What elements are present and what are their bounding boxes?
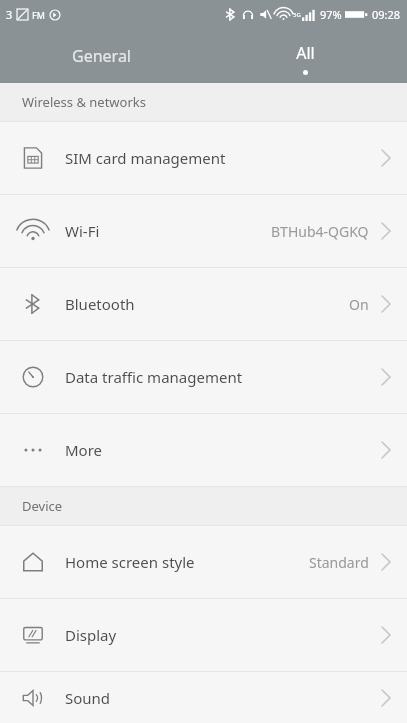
staticText: Home screen style — [65, 552, 195, 572]
staticText: Display — [65, 625, 117, 645]
button[interactable]: General — [0, 28, 203, 83]
button[interactable]: Display — [0, 599, 407, 671]
staticText: All — [296, 42, 315, 64]
staticText: 3G — [293, 11, 301, 19]
other: Open Bluetooth — [381, 295, 391, 313]
button[interactable]: Home screen style — [0, 526, 407, 598]
other: Open SIM card management — [381, 149, 391, 167]
other: Open Wi-Fi — [381, 222, 391, 240]
button[interactable]: Wi-Fi — [0, 195, 407, 267]
other: Open Display — [381, 626, 391, 644]
button[interactable]: SIM card management — [0, 122, 407, 194]
other: Open Data traffic management — [381, 368, 391, 386]
button[interactable]: More — [0, 414, 407, 486]
staticText: 97% — [320, 7, 342, 22]
staticText: On — [349, 295, 369, 314]
staticText: Device — [22, 497, 63, 515]
button[interactable]: Bluetooth — [0, 268, 407, 340]
staticText: General — [72, 45, 131, 67]
other: Open Sound — [381, 689, 391, 707]
staticText: Standard — [309, 553, 369, 572]
staticText: SIM card management — [65, 148, 226, 168]
other: Open More — [381, 441, 391, 459]
staticText: BTHub4-QGKQ — [271, 222, 369, 241]
button[interactable]: Data traffic management — [0, 341, 407, 413]
button[interactable]: All — [203, 28, 407, 83]
staticText: More — [65, 440, 103, 460]
staticText: FM — [32, 9, 45, 21]
staticText: Sound — [65, 688, 111, 708]
staticText: Wireless & networks — [22, 93, 146, 111]
staticText: Data traffic management — [65, 367, 243, 387]
staticText: Wi-Fi — [65, 221, 100, 241]
button[interactable]: Sound — [0, 672, 407, 723]
staticText: 09:28 — [372, 7, 401, 22]
other: Open Home screen style — [381, 553, 391, 571]
staticText: Bluetooth — [65, 294, 135, 314]
staticText: 3 — [6, 7, 13, 22]
